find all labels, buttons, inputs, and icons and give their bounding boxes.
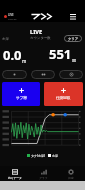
staticText: 回	[72, 58, 77, 63]
staticText: m	[22, 58, 27, 64]
staticText: 0.0	[3, 46, 22, 64]
staticText: 551	[49, 45, 72, 63]
staticText: サブ層	[16, 96, 27, 101]
button[interactable]: Option 1	[2, 70, 27, 79]
staticText: カウンター数	[30, 36, 51, 40]
staticText: 仕掛回収	[56, 96, 71, 101]
button[interactable]: 設定	[57, 166, 85, 181]
staticText: 0:00:00	[8, 17, 17, 20]
staticText: 設定	[68, 176, 74, 179]
staticText: LIVE	[8, 13, 14, 17]
staticText: 水深	[52, 154, 58, 158]
button[interactable]: グラフ	[29, 166, 57, 181]
staticText: クリア	[68, 37, 79, 41]
button[interactable]: Menu	[66, 10, 80, 22]
button[interactable]: Option 2	[31, 70, 55, 79]
button[interactable]: 釣りデータ	[0, 166, 29, 181]
staticText: 水深	[2, 37, 9, 41]
staticText: タナ(水深)	[31, 154, 45, 158]
staticText: 釣りデータ	[8, 176, 22, 179]
button[interactable]: 仕掛回収	[44, 82, 83, 106]
button[interactable]: サブ層	[2, 82, 40, 106]
staticText: LIVE	[30, 28, 43, 36]
button[interactable]: クリア	[64, 35, 82, 42]
staticText: グラフ	[39, 176, 48, 179]
button[interactable]: Option 3	[59, 70, 83, 79]
